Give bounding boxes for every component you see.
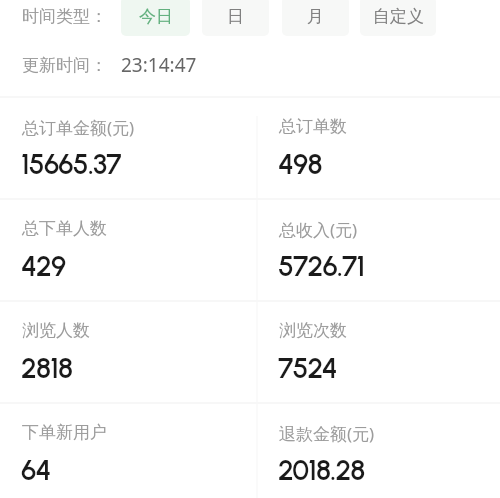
staticText: 退款金额(元) [279,422,375,445]
staticText: 总订单金额(元) [22,116,135,139]
staticText: 总订单数 [279,116,347,137]
staticText: 总收入(元) [279,218,358,241]
staticText: 7524 [278,351,337,385]
staticText: 下单新用户 [22,422,107,443]
button[interactable]: 日 [202,0,269,36]
staticText: 498 [278,147,322,181]
staticText: 5726.71 [278,249,365,283]
staticText: 2818 [21,351,73,385]
staticText: 月 [307,6,324,27]
staticText: 今日 [139,6,173,27]
staticText: 浏览次数 [279,320,347,341]
staticText: 23:14:47 [121,52,197,78]
button[interactable]: 今日 [121,0,190,36]
staticText: 时间类型： [22,6,107,27]
button[interactable]: 月 [282,0,349,36]
staticText: 64 [21,453,51,487]
staticText: 日 [227,6,244,27]
staticText: 429 [21,249,66,283]
staticText: 自定义 [373,6,424,27]
staticText: 15665.37 [21,147,121,181]
staticText: 总下单人数 [22,218,107,239]
button[interactable]: 自定义 [360,0,436,36]
staticText: 更新时间： [22,55,107,76]
staticText: 浏览人数 [22,320,90,341]
staticText: 2018.28 [278,453,365,487]
